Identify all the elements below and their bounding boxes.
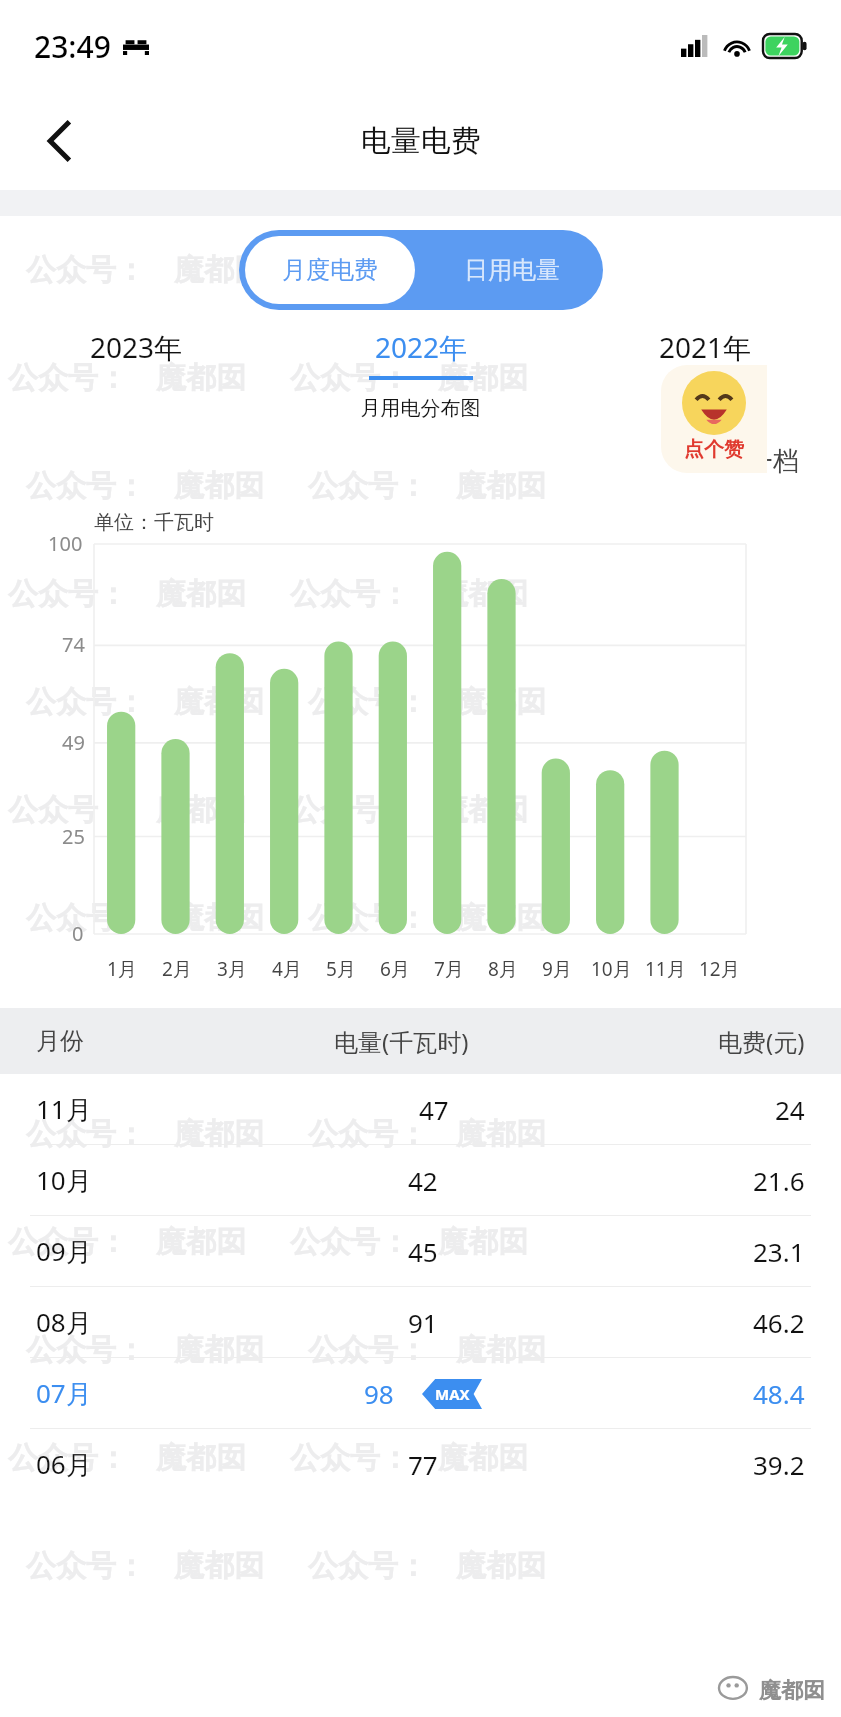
staticText: 魔都囡 [456,899,546,937]
staticText: 公众号： [8,359,128,397]
staticText: 魔都囡 [174,1547,264,1585]
button[interactable]: 点个赞 [661,365,767,473]
staticText: 24 [775,1092,805,1127]
button[interactable]: 月度电费 [245,236,415,304]
staticText: 日用电量 [464,255,560,285]
staticText: 5月 [326,956,356,982]
staticText: 公众号： [26,251,146,289]
staticText: 39.2 [753,1447,805,1482]
staticText: 魔都囡 [438,1007,528,1045]
staticText: 魔都囡 [456,683,546,721]
staticText: 42 [408,1163,438,1198]
staticText: 公众号： [26,1115,146,1153]
button[interactable]: 2022年 [341,328,501,380]
staticText: 25 [62,823,85,850]
button[interactable]: 2023年 [56,328,216,376]
staticText: 3月 [217,956,247,982]
staticText: 魔都囡 [156,1439,246,1477]
staticText: 8月 [488,956,518,982]
button[interactable]: 07月 [0,1358,841,1428]
staticText: 45 [408,1234,438,1269]
staticText: 1月 [107,956,137,982]
staticText: 公众号： [308,1115,428,1153]
staticText: 2023年 [90,328,183,366]
staticText: 公众号： [26,899,146,937]
staticText: 公众号： [26,467,146,505]
staticText: 公众号： [26,683,146,721]
button[interactable]: 09月 [0,1216,841,1286]
button[interactable]: Back [24,105,96,177]
staticText: 魔都囡 [438,791,528,829]
staticText: 魔都囡 [438,1439,528,1477]
staticText: 公众号： [308,1547,428,1585]
staticText: 2022年 [375,328,468,366]
staticText: 月用电分布图 [0,396,841,421]
staticText: 单位：千瓦时 [94,510,214,535]
staticText: 9月 [542,956,572,982]
staticText: 公众号： [8,1223,128,1261]
staticText: 魔都囡 [174,1331,264,1369]
staticText: 08月 [36,1304,92,1340]
staticText: 47 [419,1092,449,1127]
staticText: 公众号： [26,1331,146,1369]
staticText: 11月 [36,1091,92,1127]
staticText: 公众号： [290,1223,410,1261]
staticText: 48.4 [753,1376,805,1411]
staticText: 魔都囡 [456,1331,546,1369]
staticText: 魔都囡 [174,251,264,289]
staticText: 98 [364,1376,394,1411]
staticText: 77 [408,1447,438,1482]
staticText: 公众号： [290,359,410,397]
staticText: 06月 [36,1446,92,1482]
staticText: 魔都囡 [156,791,246,829]
staticText: 魔都囡 [156,575,246,613]
button[interactable]: 日用电量 [421,230,603,310]
staticText: 7月 [434,956,464,982]
staticText: 公众号： [26,1547,146,1585]
staticText: 月份 [36,1026,84,1056]
staticText: 魔都囡 [456,251,546,289]
button[interactable]: 08月 [0,1287,841,1357]
staticText: 魔都囡 [438,1223,528,1261]
staticText: 公众号： [8,1439,128,1477]
staticText: 0 [72,920,84,947]
staticText: 公众号： [308,467,428,505]
staticText: 10月 [36,1162,92,1198]
staticText: 魔都囡 [456,1547,546,1585]
staticText: 49 [62,729,85,756]
button[interactable]: 10月 [0,1145,841,1215]
staticText: 电量电费 [361,122,481,160]
staticText: 魔都囡 [438,575,528,613]
staticText: 魔都囡 [156,1223,246,1261]
staticText: 月度电费 [282,255,378,285]
staticText: 6月 [380,956,410,982]
button[interactable]: 2021年 [625,328,785,376]
staticText: 公众号： [308,1331,428,1369]
staticText: 07月 [36,1375,92,1411]
staticText: 23.1 [753,1234,805,1269]
staticText: 公众号： [308,251,428,289]
staticText: 91 [408,1305,438,1340]
staticText: 一档 [747,445,799,478]
button[interactable]: 06月 [0,1429,841,1499]
staticText: 74 [62,631,85,658]
button[interactable]: 11月 [0,1074,841,1144]
staticText: 点个赞 [684,437,744,462]
staticText: 100 [48,530,83,557]
staticText: 魔都囡 [456,467,546,505]
staticText: 公众号： [308,683,428,721]
staticText: 10月 [591,956,632,982]
staticText: 公众号： [8,791,128,829]
staticText: 4月 [272,956,302,982]
staticText: 魔都囡 [174,683,264,721]
staticText: 公众号： [290,1439,410,1477]
staticText: 公众号： [290,791,410,829]
staticText: 09月 [36,1233,92,1269]
staticText: 公众号： [308,899,428,937]
staticText: 12月 [699,956,740,982]
staticText: 公众号： [290,575,410,613]
staticText: 23:49 [34,26,111,67]
staticText: 11月 [645,956,686,982]
staticText: 2021年 [659,328,752,366]
